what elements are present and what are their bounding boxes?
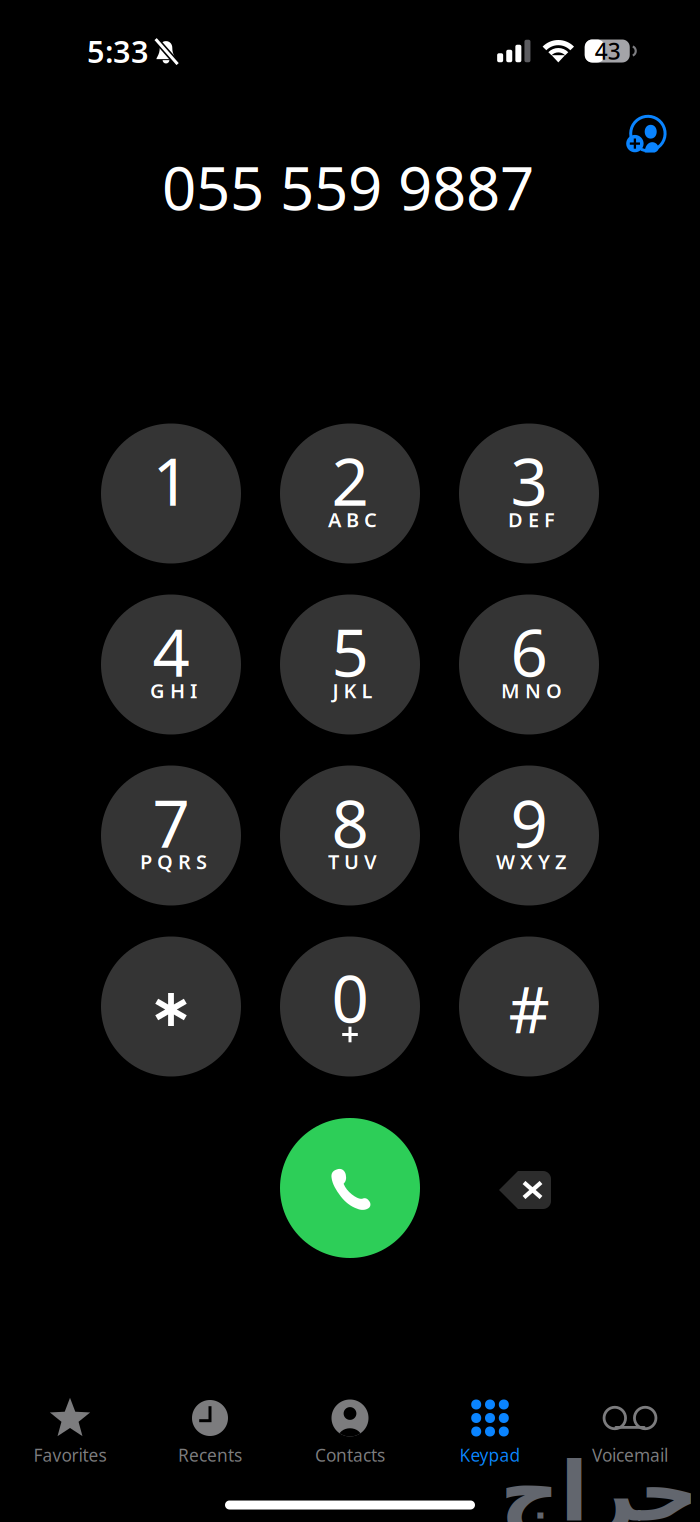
staticText: 7	[152, 779, 189, 866]
button[interactable]: 6	[459, 594, 599, 734]
staticText: Keypad	[459, 1443, 520, 1466]
button[interactable]: Call	[280, 1118, 420, 1258]
staticText: 055 559 9887	[162, 147, 534, 227]
button[interactable]: Contacts	[280, 1392, 420, 1480]
button[interactable]	[101, 936, 241, 1076]
button[interactable]: Delete	[470, 1135, 580, 1245]
staticText: JKL	[332, 677, 372, 704]
staticText: PQRS	[140, 848, 207, 875]
staticText: 0	[331, 954, 368, 1041]
staticText: MNO	[501, 677, 562, 704]
staticText: Favorites	[33, 1443, 106, 1466]
staticText: 9	[510, 779, 547, 866]
button[interactable]: Recents	[140, 1392, 280, 1480]
staticText: #	[508, 966, 549, 1051]
staticText: 4	[152, 608, 189, 695]
staticText: حراج	[499, 1445, 698, 1522]
staticText: WXYZ	[496, 848, 567, 875]
staticText: 6	[510, 608, 547, 695]
button[interactable]: 0	[280, 936, 420, 1076]
staticText: 43	[595, 36, 621, 66]
staticText: 5:33	[87, 31, 149, 71]
button[interactable]: Keypad	[420, 1392, 560, 1480]
staticText: 1	[152, 437, 189, 524]
staticText: DEF	[508, 506, 555, 533]
staticText: Voicemail	[592, 1443, 668, 1466]
button[interactable]: 3	[459, 423, 599, 563]
button[interactable]: #	[459, 936, 599, 1076]
button[interactable]: Favorites	[0, 1392, 140, 1480]
button[interactable]: 4	[101, 594, 241, 734]
button[interactable]: 1	[101, 423, 241, 563]
button[interactable]: 9	[459, 765, 599, 905]
staticText: GHI	[150, 677, 197, 704]
staticText: TUV	[328, 848, 377, 875]
staticText: 5	[331, 608, 368, 695]
staticText: ABC	[328, 506, 377, 533]
button[interactable]: Add number to contacts	[605, 94, 689, 174]
staticText: Contacts	[315, 1443, 385, 1466]
staticText: Recents	[178, 1443, 242, 1466]
staticText: 2	[331, 437, 368, 524]
button[interactable]: 2	[280, 423, 420, 563]
staticText: 8	[331, 779, 368, 866]
button[interactable]: 8	[280, 765, 420, 905]
button[interactable]: 5	[280, 594, 420, 734]
button[interactable]: 7	[101, 765, 241, 905]
button[interactable]: Voicemail	[560, 1392, 700, 1480]
staticText: 3	[510, 437, 547, 524]
